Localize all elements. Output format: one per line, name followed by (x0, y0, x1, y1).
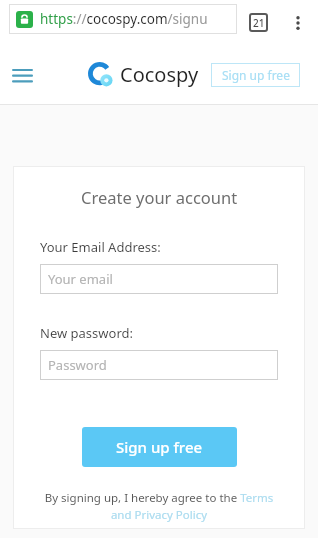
button[interactable]: Sign up free (82, 427, 237, 467)
button[interactable]: Menu (6, 59, 38, 91)
staticText: Cocospy (120, 61, 199, 88)
staticText: Your Email Address: (40, 238, 161, 256)
staticText: New password: (40, 324, 133, 342)
staticText: By signing up, I hereby agree to the Ter… (40, 490, 278, 523)
staticText: Sign up free (222, 67, 290, 83)
button[interactable]: https://cocospy.com/signu (9, 4, 237, 34)
button[interactable]: By signing up, I hereby agree to the Ter… (40, 490, 278, 523)
staticText: Create your account (81, 186, 238, 208)
staticText: Password (48, 356, 107, 374)
button[interactable]: Tabs, 21 open (249, 13, 268, 32)
button[interactable]: Your email (40, 264, 278, 294)
staticText: Your email (48, 270, 113, 288)
staticText: Sign up free (116, 437, 203, 457)
staticText: https://cocospy.com/signu (40, 10, 208, 28)
button[interactable]: More options (285, 10, 311, 36)
button[interactable]: Cocospy (88, 61, 199, 88)
button[interactable]: Password (40, 350, 278, 380)
button[interactable]: Sign up free (211, 63, 300, 87)
staticText: 21 (253, 16, 265, 30)
